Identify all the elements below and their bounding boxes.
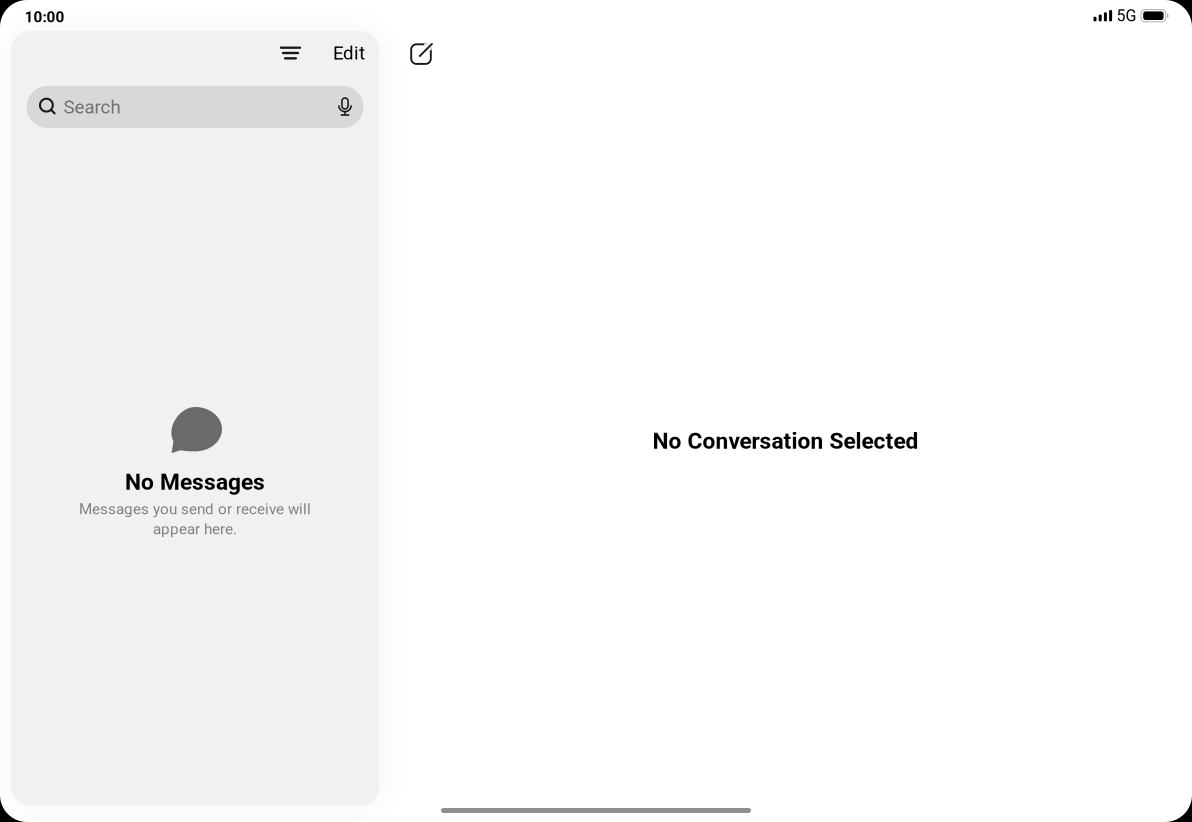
button[interactable]: Edit	[327, 31, 371, 75]
staticText: No Messages	[125, 469, 265, 495]
staticText: appear here.	[153, 520, 237, 538]
staticText: Search	[63, 96, 120, 118]
button[interactable]: Search	[26, 86, 363, 128]
staticText: No Conversation Selected	[652, 428, 918, 454]
button[interactable]: Filter conversations	[268, 31, 312, 75]
staticText: 5G	[1117, 6, 1137, 25]
staticText: Messages you send or receive will	[79, 500, 311, 518]
button[interactable]: New Message	[400, 31, 443, 74]
staticText: Edit	[333, 42, 365, 64]
staticText: 10:00	[24, 8, 64, 26]
